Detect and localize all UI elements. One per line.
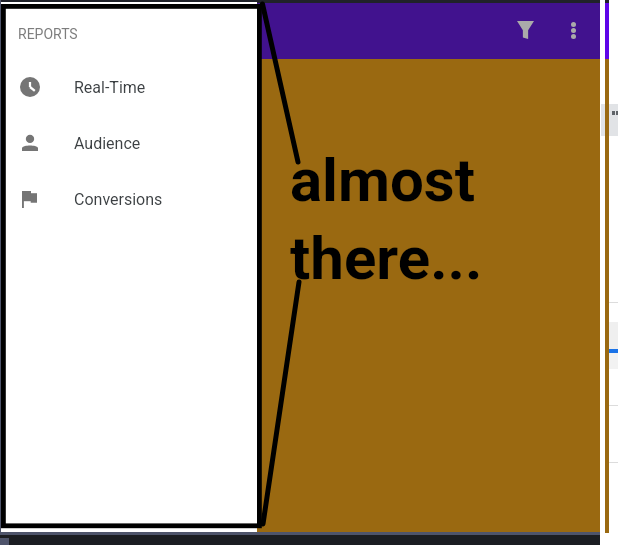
button[interactable]: More options	[556, 13, 590, 47]
staticText: REPORTS	[18, 26, 78, 42]
button[interactable]: Audience	[1, 115, 257, 171]
staticText: almost	[290, 145, 475, 215]
staticText: Real-Time	[74, 78, 146, 97]
staticText: Conversions	[74, 190, 163, 209]
button[interactable]: Filter	[508, 13, 542, 47]
staticText: Audience	[74, 134, 141, 153]
button[interactable]: Real-Time	[1, 59, 257, 115]
staticText: there...	[290, 223, 483, 293]
button[interactable]: Conversions	[1, 171, 257, 227]
